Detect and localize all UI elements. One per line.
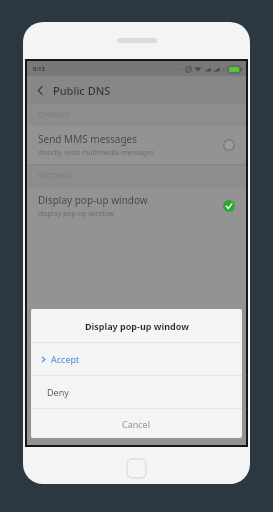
- button[interactable]: Display pop-up window: [27, 187, 246, 225]
- staticText: Cancel: [122, 418, 151, 430]
- staticText: Public DNS: [53, 83, 111, 98]
- staticText: ⚡: [222, 66, 226, 72]
- staticText: display pop-up window: [38, 209, 114, 219]
- staticText: Display pop-up window: [38, 193, 148, 207]
- staticText: ···: [178, 65, 183, 73]
- button[interactable]: Accept: [31, 343, 242, 375]
- button[interactable]: Deny: [31, 376, 242, 408]
- button[interactable]: Back: [27, 76, 53, 104]
- button[interactable]: Cancel: [31, 409, 242, 438]
- staticText: Display pop-up window: [85, 320, 189, 332]
- staticText: directly send multimedia messages: [38, 148, 154, 158]
- staticText: Deny: [47, 386, 69, 398]
- staticText: Accept: [51, 353, 80, 365]
- staticText: 0:13: [33, 65, 45, 73]
- staticText: SETTINGS: [38, 171, 71, 181]
- staticText: Send MMS messages: [38, 132, 138, 146]
- staticText: CHARGES: [38, 110, 70, 120]
- button[interactable]: Send MMS messages: [27, 126, 246, 164]
